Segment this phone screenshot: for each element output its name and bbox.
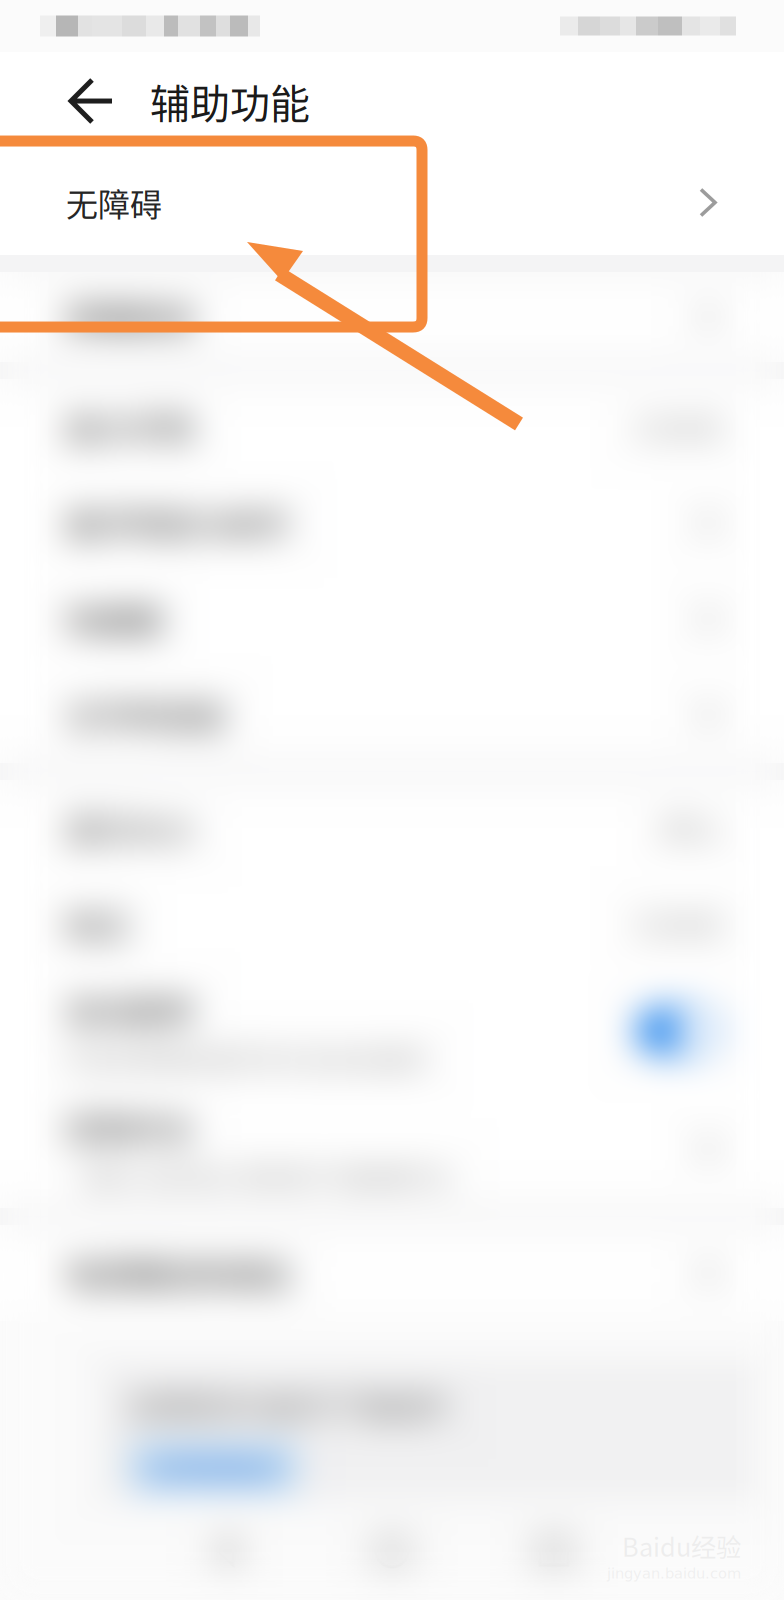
staticText: 文字转语音 bbox=[66, 692, 226, 738]
button[interactable]: 返回 bbox=[60, 52, 150, 150]
button[interactable]: 屏幕朗读 bbox=[0, 272, 784, 362]
staticText: 电源键结束通话 bbox=[66, 1250, 290, 1296]
button[interactable]: 自动旋转 bbox=[0, 972, 784, 1090]
button[interactable]: 主屏幕 bbox=[350, 1510, 434, 1594]
button[interactable]: 返回 bbox=[188, 1510, 272, 1594]
staticText: 开启后屏幕会随手机方向自动旋转 bbox=[66, 1041, 426, 1076]
staticText: 校正 bbox=[66, 901, 130, 947]
staticText: 无障碍服务 bbox=[143, 1447, 283, 1488]
button[interactable]: 最近任务 bbox=[512, 1510, 596, 1594]
button[interactable]: 放大手势 bbox=[0, 379, 784, 475]
staticText: 显示大小 bbox=[66, 805, 194, 851]
staticText: 放大手势 bbox=[66, 404, 194, 450]
button[interactable]: 无障碍 bbox=[0, 150, 784, 255]
staticText: 控制时长 bbox=[66, 1104, 194, 1151]
button[interactable]: 无障碍服务 bbox=[129, 1442, 297, 1493]
button[interactable]: 悬浮导航与单手 bbox=[0, 475, 784, 571]
staticText: 快捷键 bbox=[66, 596, 162, 642]
staticText: 如需更多功能可下载插件 bbox=[129, 1384, 448, 1426]
staticText: 自动旋转 bbox=[66, 986, 194, 1033]
staticText: 无障碍 bbox=[66, 179, 162, 226]
button[interactable]: 文字转语音 bbox=[0, 667, 784, 763]
staticText: jingyan.baidu.com bbox=[607, 1565, 741, 1582]
staticText: 辅助功能 bbox=[150, 72, 310, 130]
staticText: 屏幕朗读 bbox=[66, 294, 194, 340]
button[interactable]: 显示大小 bbox=[0, 780, 784, 876]
button[interactable]: 控制时长 bbox=[0, 1090, 784, 1208]
button[interactable]: 校正 bbox=[0, 876, 784, 972]
staticText: 悬浮导航与单手 bbox=[66, 500, 290, 546]
button[interactable]: 电源键结束通话 bbox=[0, 1225, 784, 1321]
staticText: Baidu经验 bbox=[622, 1527, 741, 1564]
button[interactable]: 快捷键 bbox=[0, 571, 784, 667]
